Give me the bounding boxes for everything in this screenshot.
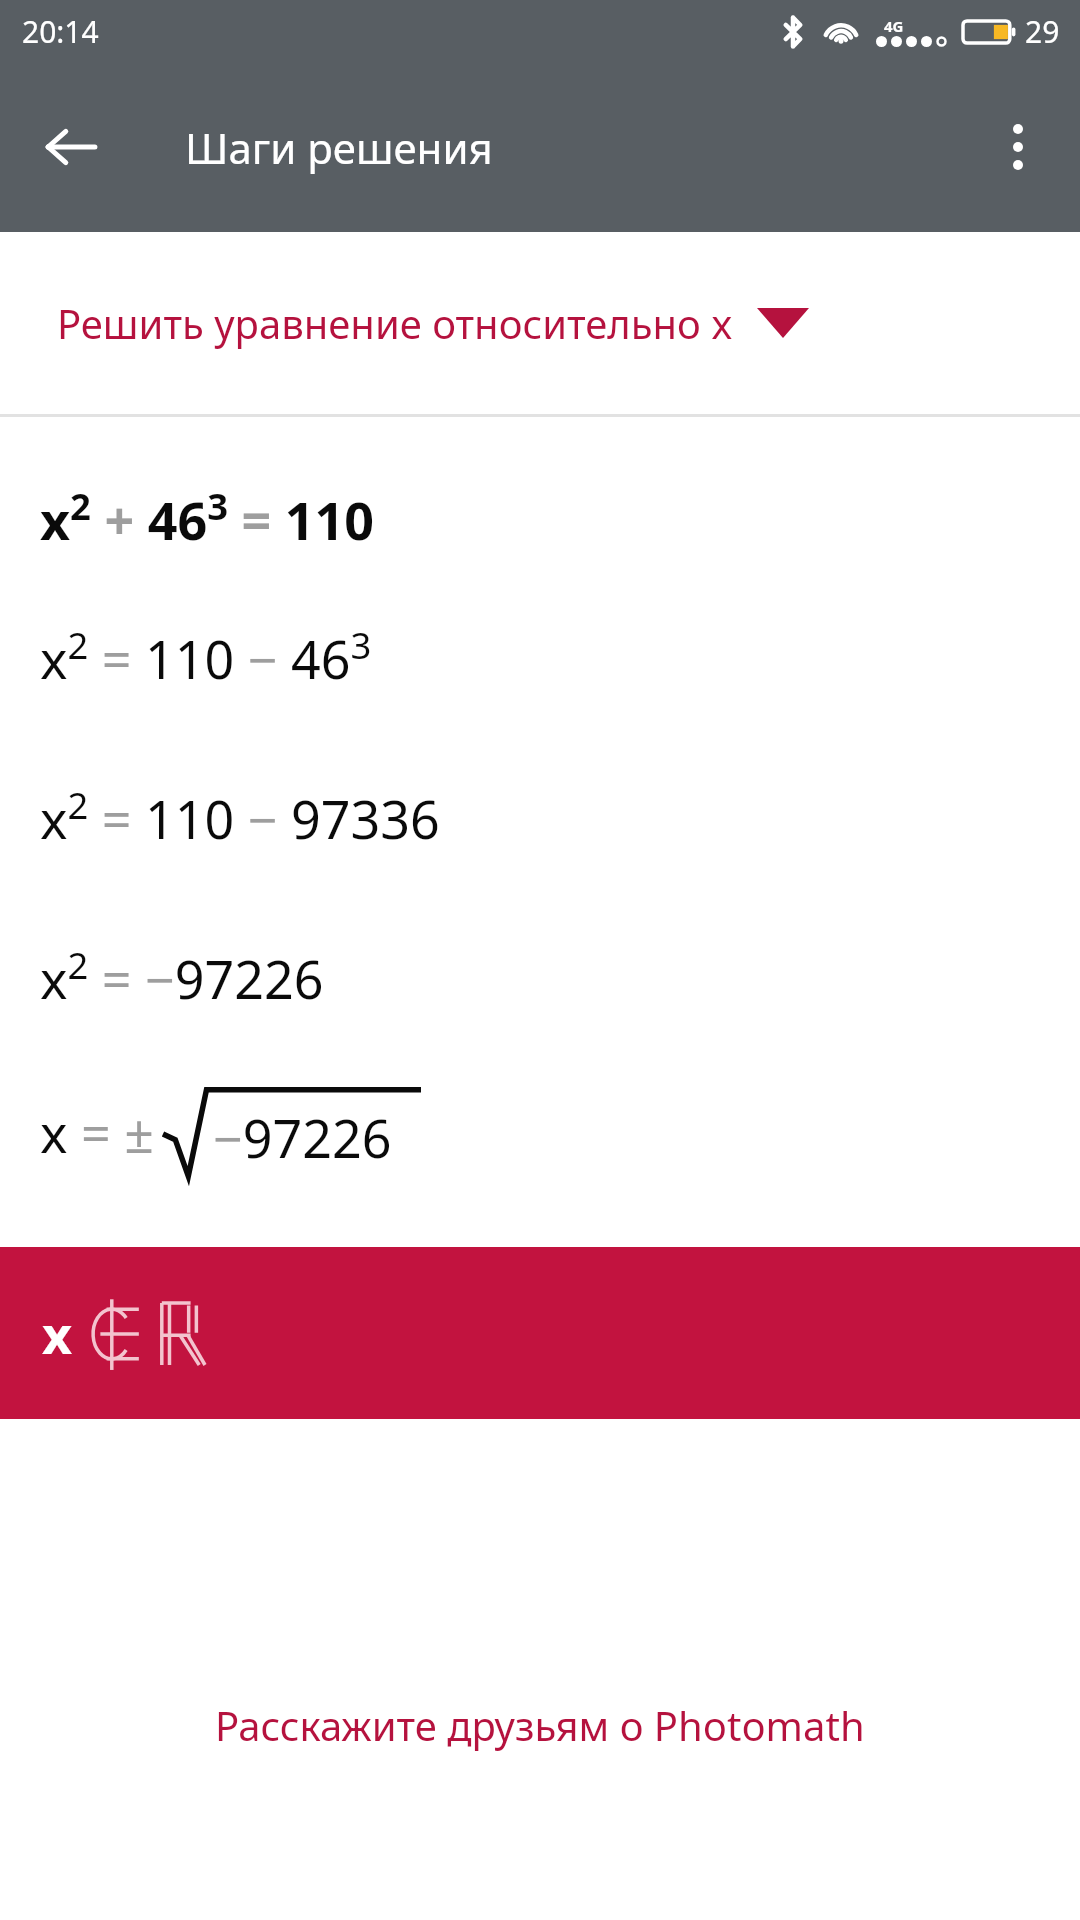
button[interactable]: Назад (30, 106, 112, 188)
button[interactable]: Расскажите друзьям о Photomath (0, 1680, 1080, 1920)
staticText: x2 + 463 = 110 (40, 481, 374, 555)
staticText: x2 = 110 − 97336 (40, 780, 440, 854)
button[interactable]: Ещё (978, 107, 1058, 187)
staticText: 29 (1025, 11, 1060, 52)
staticText: x2 = −97226 (40, 940, 324, 1014)
staticText: 20:14 (22, 11, 99, 52)
button[interactable]: x (0, 1247, 1080, 1419)
staticText: 4G (884, 16, 904, 36)
staticText: Расскажите друзьям о Photomath (215, 1698, 865, 1752)
staticText: x = ± (40, 1097, 155, 1168)
staticText: Шаги решения (185, 119, 493, 176)
button[interactable]: Решить уравнение относительно x (0, 232, 1080, 414)
staticText: x2 = 110 − 463 (40, 620, 372, 694)
staticText: Решить уравнение относительно x (57, 296, 733, 350)
staticText: x (42, 1298, 73, 1369)
staticText: −97226 (213, 1102, 392, 1173)
